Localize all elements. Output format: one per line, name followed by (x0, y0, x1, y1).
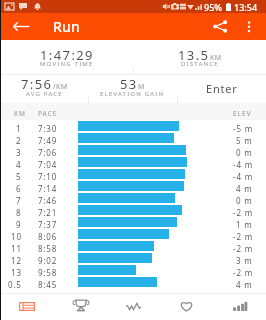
staticText: 7:04 (38, 159, 58, 170)
staticText: KM (14, 109, 26, 118)
button[interactable]: 13 (0, 264, 266, 276)
staticText: 8:45 (38, 279, 58, 290)
staticText: 7:06 (38, 147, 58, 158)
staticText: 3 (16, 147, 22, 158)
staticText: 6 (16, 183, 22, 194)
button[interactable]: Clubs (160, 294, 213, 320)
staticText: 8:58 (38, 243, 58, 254)
staticText: 7:21 (38, 207, 58, 218)
staticText: AVG PACE (26, 90, 63, 98)
staticText: -5 m (233, 123, 253, 134)
staticText: 95% (204, 1, 222, 13)
button[interactable]: Share (206, 13, 234, 40)
staticText: 9:02 (38, 255, 58, 266)
staticText: 4 (16, 159, 22, 170)
button[interactable]: More options (235, 13, 263, 40)
button[interactable]: 7 (0, 192, 266, 204)
staticText: KM (210, 53, 222, 63)
staticText: 8 (16, 207, 22, 218)
staticText: PACE (38, 109, 58, 118)
button[interactable]: 1 (0, 120, 266, 132)
staticText: 7:30 (38, 123, 58, 134)
button[interactable]: 4 (0, 156, 266, 168)
staticText: 7:56 (21, 75, 53, 93)
staticText: 10 (11, 231, 22, 242)
staticText: MOVING TIME (40, 60, 94, 68)
button[interactable]: 9 (0, 216, 266, 228)
staticText: 4 m (236, 279, 253, 290)
button[interactable]: 0.5 (0, 276, 266, 288)
staticText: -2 m (233, 243, 253, 254)
staticText: -4 m (233, 171, 253, 182)
staticText: -2 m (233, 231, 253, 242)
button[interactable]: 8 (0, 204, 266, 216)
staticText: Run (53, 17, 81, 36)
button[interactable]: 12 (0, 252, 266, 264)
staticText: 1 (16, 123, 22, 134)
button[interactable]: Enter (177, 75, 266, 103)
staticText: 7 (16, 195, 22, 206)
staticText: -2 m (233, 267, 253, 278)
staticText: 7:49 (38, 135, 58, 146)
staticText: 4 m (236, 183, 253, 194)
staticText: 8:06 (38, 231, 58, 242)
button[interactable]: 11 (0, 240, 266, 252)
staticText: -4 m (233, 159, 253, 170)
button[interactable]: Stats (213, 294, 266, 320)
staticText: 2 (16, 135, 22, 146)
staticText: 0.5 (8, 279, 22, 290)
staticText: 13:54 (234, 1, 258, 13)
staticText: 7:14 (38, 183, 58, 194)
staticText: 3 m (236, 255, 253, 266)
button[interactable]: Record (107, 294, 160, 320)
button[interactable]: 10 (0, 228, 266, 240)
staticText: 5 (16, 171, 22, 182)
button[interactable]: Challenges (54, 294, 107, 320)
staticText: 13 (11, 267, 22, 278)
staticText: -2 m (233, 207, 253, 218)
staticText: /KM (53, 82, 68, 92)
staticText: 11 (11, 243, 22, 254)
staticText: 5 m (236, 135, 253, 146)
staticText: ELEVATION GAIN (100, 90, 165, 98)
staticText: 1:47:29 (40, 46, 94, 64)
staticText: ELEV (233, 109, 252, 118)
staticText: 13.5 (178, 46, 210, 64)
staticText: 9:58 (38, 267, 58, 278)
button[interactable]: Back (4, 13, 38, 40)
staticText: 1 m (236, 219, 253, 230)
button[interactable]: 3 (0, 144, 266, 156)
staticText: 0 m (236, 195, 253, 206)
staticText: Enter (206, 81, 238, 96)
button[interactable]: 5 (0, 168, 266, 180)
staticText: 7:37 (38, 219, 58, 230)
button[interactable]: Feed (0, 294, 54, 320)
button[interactable]: 6 (0, 180, 266, 192)
staticText: 9 (16, 219, 22, 230)
staticText: M (138, 82, 145, 92)
staticText: DISTANCE (181, 60, 219, 68)
staticText: 7:10 (38, 171, 58, 182)
staticText: 0 m (236, 147, 253, 158)
button[interactable]: 2 (0, 132, 266, 144)
staticText: 12 (11, 255, 22, 266)
staticText: 7:46 (38, 195, 58, 206)
staticText: 53 (120, 75, 138, 93)
